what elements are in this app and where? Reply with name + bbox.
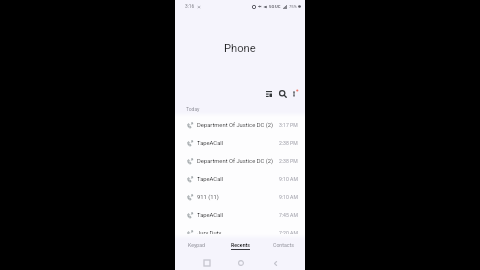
button[interactable]: More options [288,88,300,100]
staticText: 2:38 PM [279,158,298,164]
button[interactable]: Recents [219,237,262,253]
staticText: 3:16 [185,4,195,10]
staticText: Contacts [273,242,294,248]
button[interactable]: Contacts [262,237,305,253]
staticText: Jury Duty [197,230,222,237]
staticText: UC [275,4,281,9]
staticText: Today [186,106,200,112]
button[interactable]: Sort [263,88,275,100]
staticText: 7:45 AM [279,212,298,218]
button[interactable]: Home [235,257,247,269]
staticText: TapeACall [197,212,224,219]
button[interactable]: TapeACall [175,134,305,152]
button[interactable]: Jury Duty [175,224,305,242]
staticText: 911 (11) [197,194,219,201]
button[interactable]: Back [269,257,281,269]
staticText: 5G [269,4,275,9]
staticText: Department Of Justice DC (2) [197,122,273,129]
button[interactable]: Department Of Justice DC (2) [175,116,305,134]
button[interactable]: Department Of Justice DC (2) [175,152,305,170]
staticText: Keypad [188,242,206,248]
staticText: 3:17 PM [279,122,298,128]
staticText: 7:20 AM [279,230,298,236]
staticText: Department Of Justice DC (2) [197,158,273,165]
staticText: 2:38 PM [279,140,298,146]
button[interactable]: TapeACall [175,170,305,188]
button[interactable]: 911 (11) [175,188,305,206]
staticText: 9:10 AM [279,176,298,182]
staticText: 9:10 AM [279,194,298,200]
staticText: Recents [231,242,250,248]
button[interactable]: Recent apps [201,257,213,269]
button[interactable]: TapeACall [175,206,305,224]
button[interactable]: Keypad [175,237,219,253]
staticText: 75% [289,4,297,9]
button[interactable]: Search [277,88,289,100]
staticText: TapeACall [197,140,224,147]
staticText: TapeACall [197,176,224,183]
staticText: Phone [224,42,256,55]
